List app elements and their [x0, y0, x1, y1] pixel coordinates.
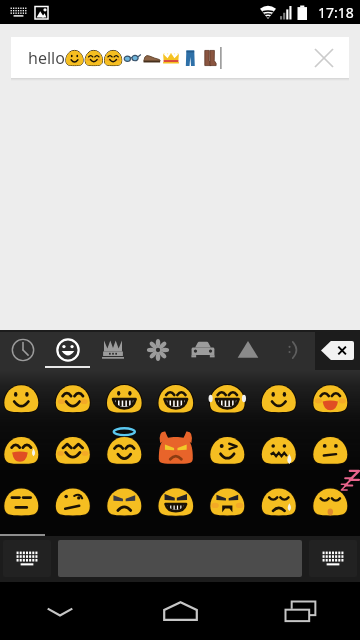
button[interactable]: Backspace	[315, 330, 360, 370]
button[interactable]: Emoji 2	[51, 370, 102, 422]
button[interactable]: Switch keyboard	[309, 540, 357, 577]
button[interactable]: Hide keyboard	[0, 582, 120, 640]
button[interactable]: Emoji 15	[0, 474, 51, 526]
button[interactable]: Recent	[0, 330, 45, 370]
button[interactable]: Emoji 10	[102, 422, 153, 474]
staticText: 17:18	[318, 3, 354, 22]
button[interactable]: Emoji 4	[153, 370, 204, 422]
button[interactable]: Emoji 8	[0, 422, 51, 474]
button[interactable]: Emoji 12	[204, 422, 255, 474]
button[interactable]: Emoji 7	[306, 370, 357, 422]
button[interactable]: Emoji 20	[255, 474, 306, 526]
button[interactable]: Emoji 3	[102, 370, 153, 422]
button[interactable]: Travel	[180, 330, 225, 370]
button[interactable]: Objects	[90, 330, 135, 370]
button[interactable]: Emoji 5	[204, 370, 255, 422]
button[interactable]: Emoticons	[270, 330, 315, 370]
button[interactable]: Emoji 11	[153, 422, 204, 474]
button[interactable]: Nature	[135, 330, 180, 370]
button[interactable]: Emoji 18	[153, 474, 204, 526]
button[interactable]: Emoji 16	[51, 474, 102, 526]
button[interactable]: Symbols	[225, 330, 270, 370]
button[interactable]: Emoji 17	[102, 474, 153, 526]
button[interactable]: Emoji 14	[306, 422, 357, 474]
button[interactable]: Home	[120, 582, 240, 640]
staticText: hello	[28, 47, 65, 69]
button[interactable]: Emoji 13	[255, 422, 306, 474]
button[interactable]: Clear text	[298, 37, 349, 78]
button[interactable]: Emoji 9	[51, 422, 102, 474]
button[interactable]: Switch keyboard	[3, 540, 51, 577]
button[interactable]: hello	[11, 37, 349, 78]
button[interactable]: Emoji 6	[255, 370, 306, 422]
button[interactable]: Emoji 19	[204, 474, 255, 526]
button[interactable]: Emoji 21	[306, 474, 357, 526]
button[interactable]: Recent apps	[240, 582, 360, 640]
button[interactable]: Emoji 1	[0, 370, 51, 422]
button[interactable]: Smileys	[45, 330, 90, 370]
